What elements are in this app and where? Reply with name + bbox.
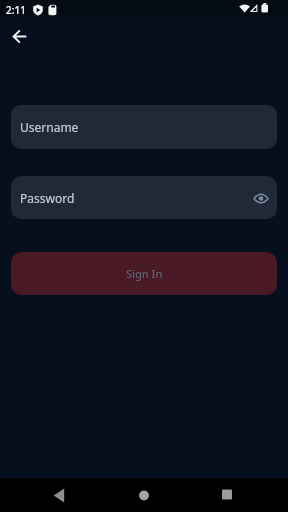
staticText: Username xyxy=(20,119,79,135)
button[interactable] xyxy=(40,478,77,512)
button[interactable] xyxy=(251,188,271,208)
staticText: Password xyxy=(20,190,75,206)
button[interactable]: Password xyxy=(11,176,277,219)
button[interactable] xyxy=(209,478,245,512)
staticText: Sign In xyxy=(126,266,163,281)
staticText: 2:11 xyxy=(6,3,26,17)
button[interactable] xyxy=(4,21,35,52)
button[interactable]: Sign In xyxy=(11,252,277,295)
button[interactable] xyxy=(126,478,162,512)
button[interactable]: Username xyxy=(11,105,277,149)
